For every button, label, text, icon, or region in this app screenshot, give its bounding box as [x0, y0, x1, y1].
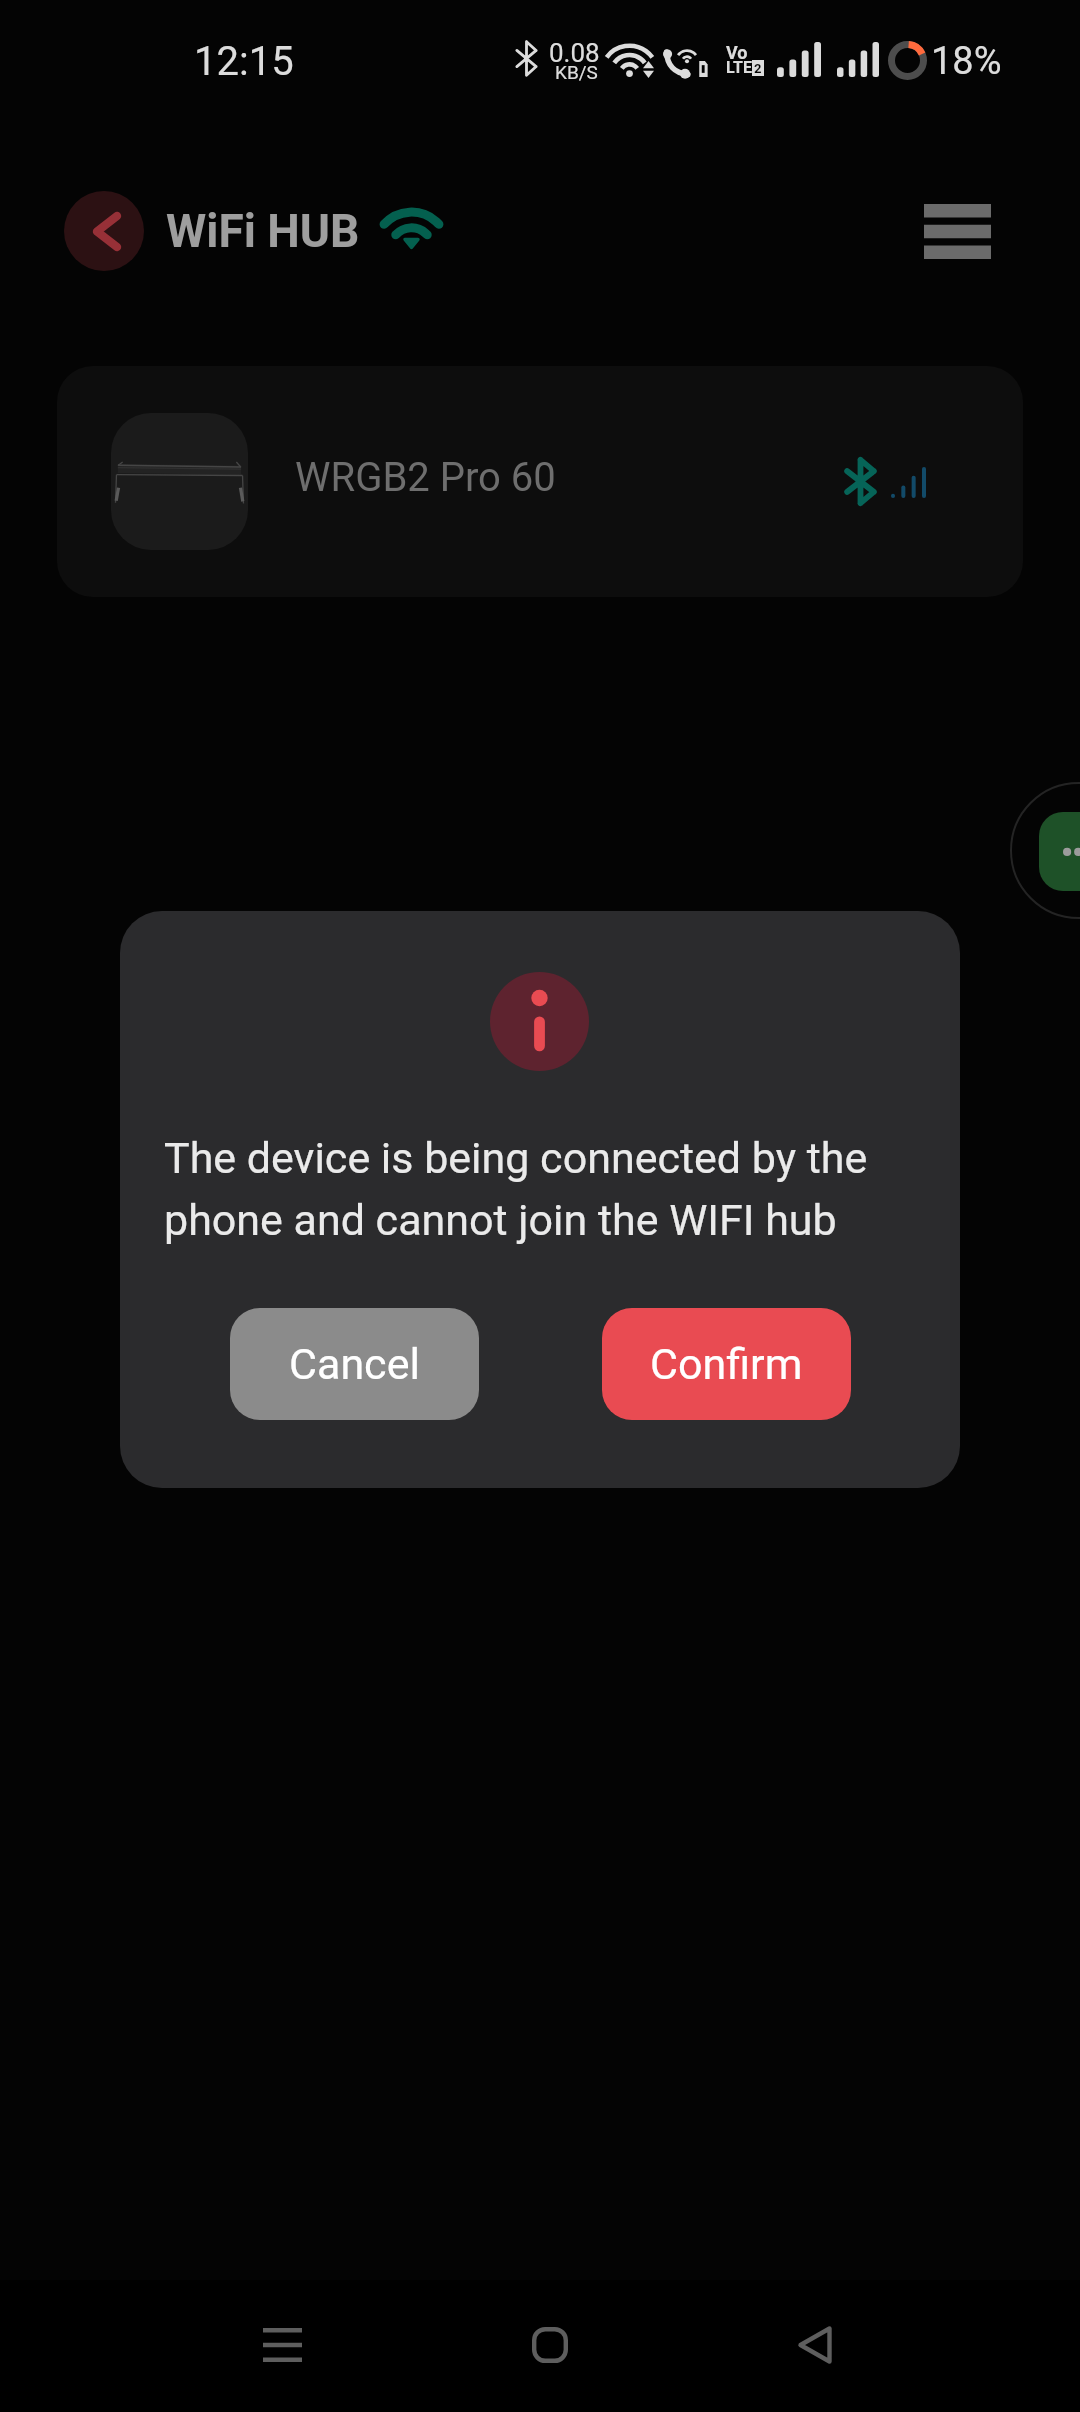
- staticText: Vo: [726, 42, 748, 63]
- staticText: KB/S: [555, 61, 598, 83]
- staticText: 2: [754, 61, 762, 76]
- staticText: WiFi HUB: [166, 204, 360, 258]
- staticText: The device is being connected by the pho…: [164, 1133, 884, 1245]
- staticText: LTE: [726, 58, 752, 77]
- button[interactable]: WRGB2 Pro 60: [57, 366, 1023, 597]
- button[interactable]: Home: [490, 2285, 610, 2405]
- staticText: Confirm: [650, 1339, 803, 1389]
- button[interactable]: Confirm: [602, 1308, 851, 1420]
- staticText: 12:15: [194, 38, 294, 85]
- staticText: 0.08: [549, 38, 600, 68]
- staticText: Cancel: [289, 1339, 420, 1389]
- button[interactable]: Recents: [222, 2285, 342, 2405]
- button[interactable]: Back: [64, 191, 144, 271]
- button[interactable]: Assistant: [1039, 812, 1080, 891]
- staticText: WRGB2 Pro 60: [295, 454, 556, 501]
- button[interactable]: Menu: [902, 176, 1012, 286]
- button[interactable]: Back: [755, 2285, 875, 2405]
- button[interactable]: Cancel: [230, 1308, 479, 1420]
- staticText: 18%: [931, 39, 1002, 84]
